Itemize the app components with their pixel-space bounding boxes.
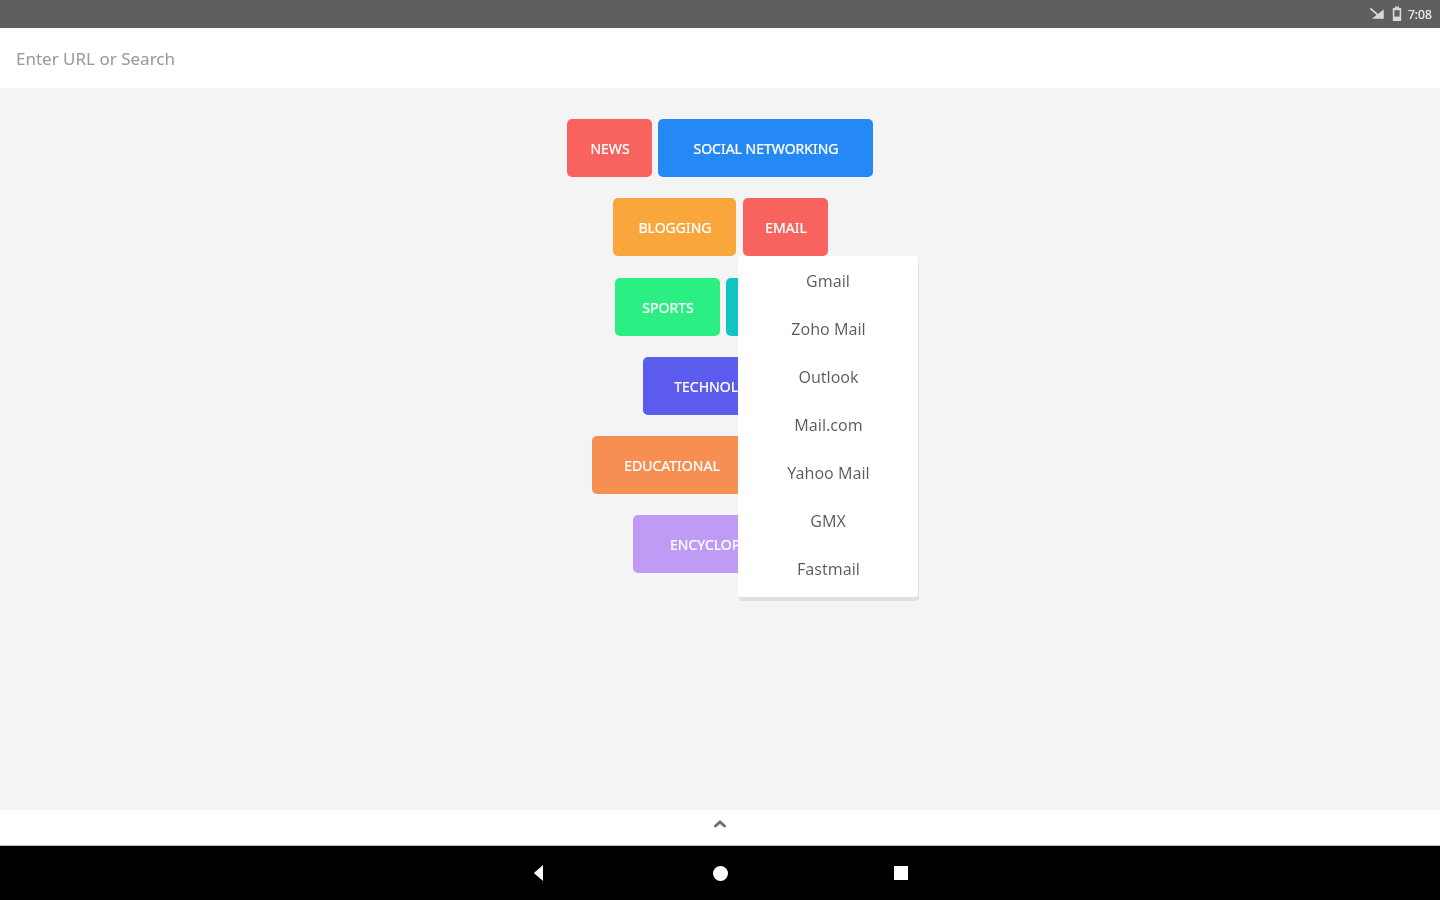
button[interactable]: NEWS	[567, 119, 652, 177]
staticText: Yahoo Mail	[787, 462, 870, 484]
button[interactable]: GMX	[738, 497, 918, 545]
other: Signal	[1369, 6, 1385, 22]
button[interactable]: Recent apps	[874, 846, 928, 900]
staticText: 7:08	[1408, 6, 1432, 22]
staticText: Zoho Mail	[791, 318, 866, 340]
staticText: Gmail	[806, 270, 850, 292]
staticText: TECHNOLOGY	[674, 377, 767, 396]
staticText: ENCYCLOPEDIA	[670, 535, 772, 554]
button[interactable]: EMAIL	[743, 198, 828, 256]
button[interactable]: Fastmail	[738, 545, 918, 593]
staticText: SOCIAL NETWORKING	[693, 139, 839, 158]
staticText: GMX	[810, 510, 846, 532]
button[interactable]: EDUCATIONAL	[592, 436, 752, 494]
button[interactable]: Mail.com	[738, 401, 918, 449]
button[interactable]: TECHNOLOGY	[643, 357, 798, 415]
staticText: BLOGGING	[638, 218, 712, 237]
staticText: Fastmail	[797, 558, 860, 580]
staticText: NEWS	[590, 139, 630, 158]
button[interactable]: Yahoo Mail	[738, 449, 918, 497]
button[interactable]: Enter URL or Search	[0, 28, 1440, 88]
button[interactable]: Gmail	[738, 257, 918, 305]
button[interactable]: SEARCH	[726, 278, 826, 336]
button[interactable]: ENCYCLOPEDIA	[633, 515, 808, 573]
staticText: EMAIL	[765, 218, 807, 237]
button[interactable]	[758, 436, 848, 494]
other: Battery	[1392, 6, 1402, 22]
button[interactable]: Outlook	[738, 353, 918, 401]
button[interactable]: Zoho Mail	[738, 305, 918, 353]
button[interactable]: Expand	[0, 810, 1440, 846]
button[interactable]: SOCIAL NETWORKING	[658, 119, 873, 177]
button[interactable]: SPORTS	[615, 278, 720, 336]
staticText: SPORTS	[642, 298, 694, 317]
button[interactable]: Home	[693, 846, 747, 900]
staticText: Enter URL or Search	[16, 47, 175, 70]
button[interactable]: BLOGGING	[613, 198, 736, 256]
staticText: Outlook	[798, 366, 859, 388]
button[interactable]: Back	[512, 846, 566, 900]
staticText: EDUCATIONAL	[624, 456, 720, 475]
staticText: Mail.com	[794, 414, 863, 436]
